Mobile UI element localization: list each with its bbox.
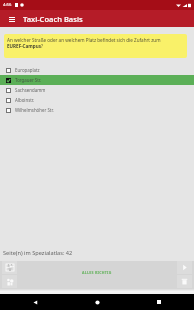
button[interactable]: Delete: [177, 275, 192, 288]
button[interactable]: Sachsendamm: [0, 85, 194, 95]
button[interactable]: Wilhelmshöher Str.: [0, 105, 194, 115]
staticText: Seite(n) im Spezialatlas: 42: [3, 249, 73, 257]
staticText: Torgauer Str.: [15, 77, 42, 83]
staticText: 4:56: [3, 2, 12, 8]
button[interactable]: Show location: [2, 275, 17, 288]
button[interactable]: Next question: [177, 261, 192, 274]
staticText: Europaplatz: [15, 67, 40, 73]
button[interactable]: Alboinstr.: [0, 95, 194, 105]
staticText: An welcher Straße oder an welchem Platz …: [7, 37, 184, 49]
staticText: Sachsendamm: [15, 87, 46, 93]
staticText: ALLES RICHTIG: [82, 270, 112, 275]
button[interactable]: Torgauer Str.: [0, 75, 194, 85]
button[interactable]: Recent apps: [154, 297, 164, 307]
button[interactable]: Home: [92, 297, 102, 307]
staticText: Taxi-Coach Basis: [23, 14, 83, 24]
staticText: Alboinstr.: [15, 97, 35, 103]
staticText: Wilhelmshöher Str.: [15, 107, 54, 113]
button[interactable]: Europaplatz: [0, 65, 194, 75]
button[interactable]: Open navigation menu: [6, 13, 18, 25]
button[interactable]: Show atlas page: [2, 261, 17, 274]
button[interactable]: Back: [30, 297, 40, 307]
